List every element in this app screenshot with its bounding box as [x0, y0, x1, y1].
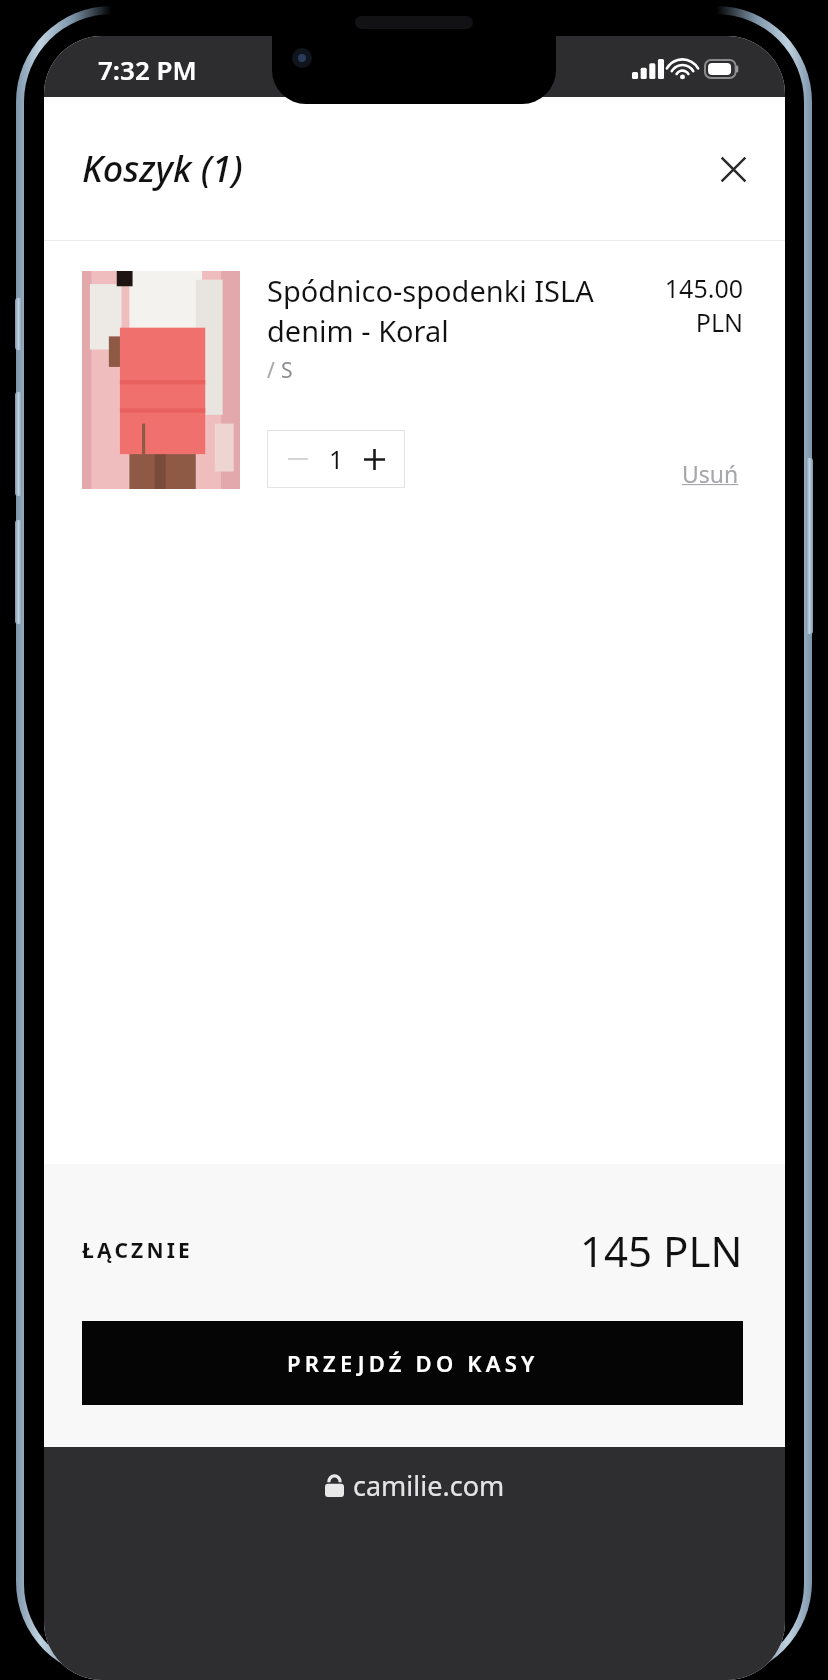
- staticText: ŁĄCZNIE: [82, 1236, 194, 1265]
- staticText: 145.00 PLN: [639, 271, 743, 340]
- staticText: 1: [329, 442, 344, 476]
- other: Zwiększ: [355, 440, 393, 478]
- staticText: 145 PLN: [580, 1222, 743, 1279]
- staticText: PRZEJDŹ DO KASY: [287, 1348, 539, 1378]
- staticText: Koszyk (1): [82, 144, 243, 193]
- staticText: camilie.com: [353, 1467, 505, 1504]
- staticText: S: [281, 356, 293, 385]
- staticText: Spódnico-spodenki ISLA denim - Koral: [267, 271, 627, 351]
- button[interactable]: Zamknij: [705, 141, 761, 197]
- other: Zmniejsz: [279, 440, 317, 478]
- button[interactable]: Usuń: [678, 436, 743, 483]
- staticText: /: [267, 356, 281, 385]
- staticText: Usuń: [682, 458, 739, 489]
- button[interactable]: Zmniejsz: [267, 430, 405, 488]
- button[interactable]: PRZEJDŹ DO KASY: [82, 1321, 743, 1405]
- staticText: 7:32 PM: [98, 52, 197, 87]
